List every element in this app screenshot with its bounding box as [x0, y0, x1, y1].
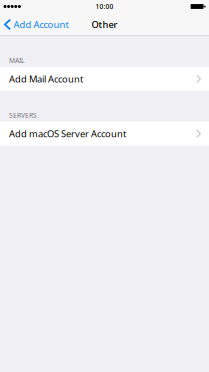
staticText: Add macOS Server Account	[9, 127, 126, 140]
button[interactable]: Add macOS Server Account	[0, 122, 209, 146]
button[interactable]: Back to Add Account	[0, 13, 73, 36]
staticText: Other	[91, 18, 117, 31]
button[interactable]: Add Mail Account	[0, 67, 209, 91]
staticText: Add Mail Account	[9, 73, 83, 85]
staticText: Add Account	[13, 18, 68, 31]
staticText: 10:00	[95, 2, 113, 11]
staticText: MAIL	[9, 56, 24, 65]
staticText: SERVERS	[9, 111, 37, 120]
